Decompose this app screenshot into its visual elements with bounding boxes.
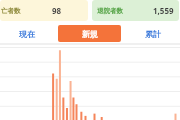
staticText: 1,559 bbox=[153, 5, 174, 16]
button[interactable]: 亡者数 bbox=[0, 0, 88, 21]
button[interactable]: 累計 bbox=[129, 25, 176, 42]
staticText: 退院者数 bbox=[97, 7, 123, 15]
staticText: 亡者数 bbox=[1, 7, 21, 15]
button[interactable]: 現在 bbox=[4, 25, 50, 42]
staticText: 新規 bbox=[82, 29, 98, 39]
staticText: 98 bbox=[52, 5, 62, 16]
button[interactable]: 退院者数 bbox=[92, 0, 179, 21]
staticText: 現在 bbox=[19, 29, 35, 39]
button[interactable]: 新規 bbox=[58, 25, 121, 42]
staticText: 累計 bbox=[145, 29, 161, 39]
